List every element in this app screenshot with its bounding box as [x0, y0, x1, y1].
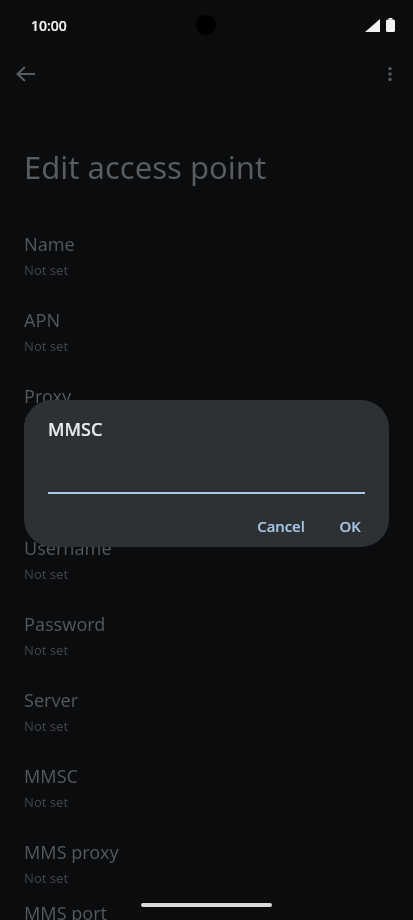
staticText: Not set: [24, 337, 69, 355]
staticText: MMS port: [24, 901, 108, 920]
button[interactable]: Username: [0, 521, 413, 597]
staticText: Password: [24, 612, 106, 637]
button[interactable]: OK: [327, 508, 373, 544]
button[interactable]: Server: [0, 673, 413, 749]
button[interactable]: Name: [0, 217, 413, 293]
button[interactable]: [48, 472, 365, 494]
staticText: Not set: [24, 717, 69, 735]
staticText: Not set: [24, 793, 69, 811]
staticText: Edit access point: [24, 146, 267, 188]
staticText: Not set: [24, 869, 69, 887]
staticText: Username: [24, 536, 112, 561]
staticText: Proxy: [24, 384, 72, 409]
staticText: MMS proxy: [24, 840, 119, 865]
staticText: Not set: [24, 261, 69, 279]
staticText: Name: [24, 232, 75, 257]
staticText: MMSC: [24, 764, 78, 789]
button[interactable]: MMS proxy: [0, 825, 413, 901]
staticText: Not set: [24, 641, 69, 659]
button[interactable]: Proxy: [0, 369, 413, 445]
button[interactable]: MMS port: [0, 901, 413, 920]
staticText: OK: [339, 516, 361, 536]
button[interactable]: Back: [6, 54, 46, 94]
button[interactable]: Port: [0, 445, 413, 521]
staticText: Not set: [24, 489, 69, 507]
button[interactable]: More options: [370, 54, 410, 94]
staticText: MMSC: [48, 417, 103, 442]
staticText: Not set: [24, 413, 69, 431]
staticText: 10:00: [31, 16, 67, 35]
staticText: Cancel: [257, 516, 305, 536]
staticText: Server: [24, 688, 79, 713]
button[interactable]: APN: [0, 293, 413, 369]
button[interactable]: Cancel: [245, 508, 317, 544]
staticText: Not set: [24, 565, 69, 583]
staticText: APN: [24, 308, 61, 333]
button[interactable]: MMSC: [0, 749, 413, 825]
button[interactable]: Password: [0, 597, 413, 673]
